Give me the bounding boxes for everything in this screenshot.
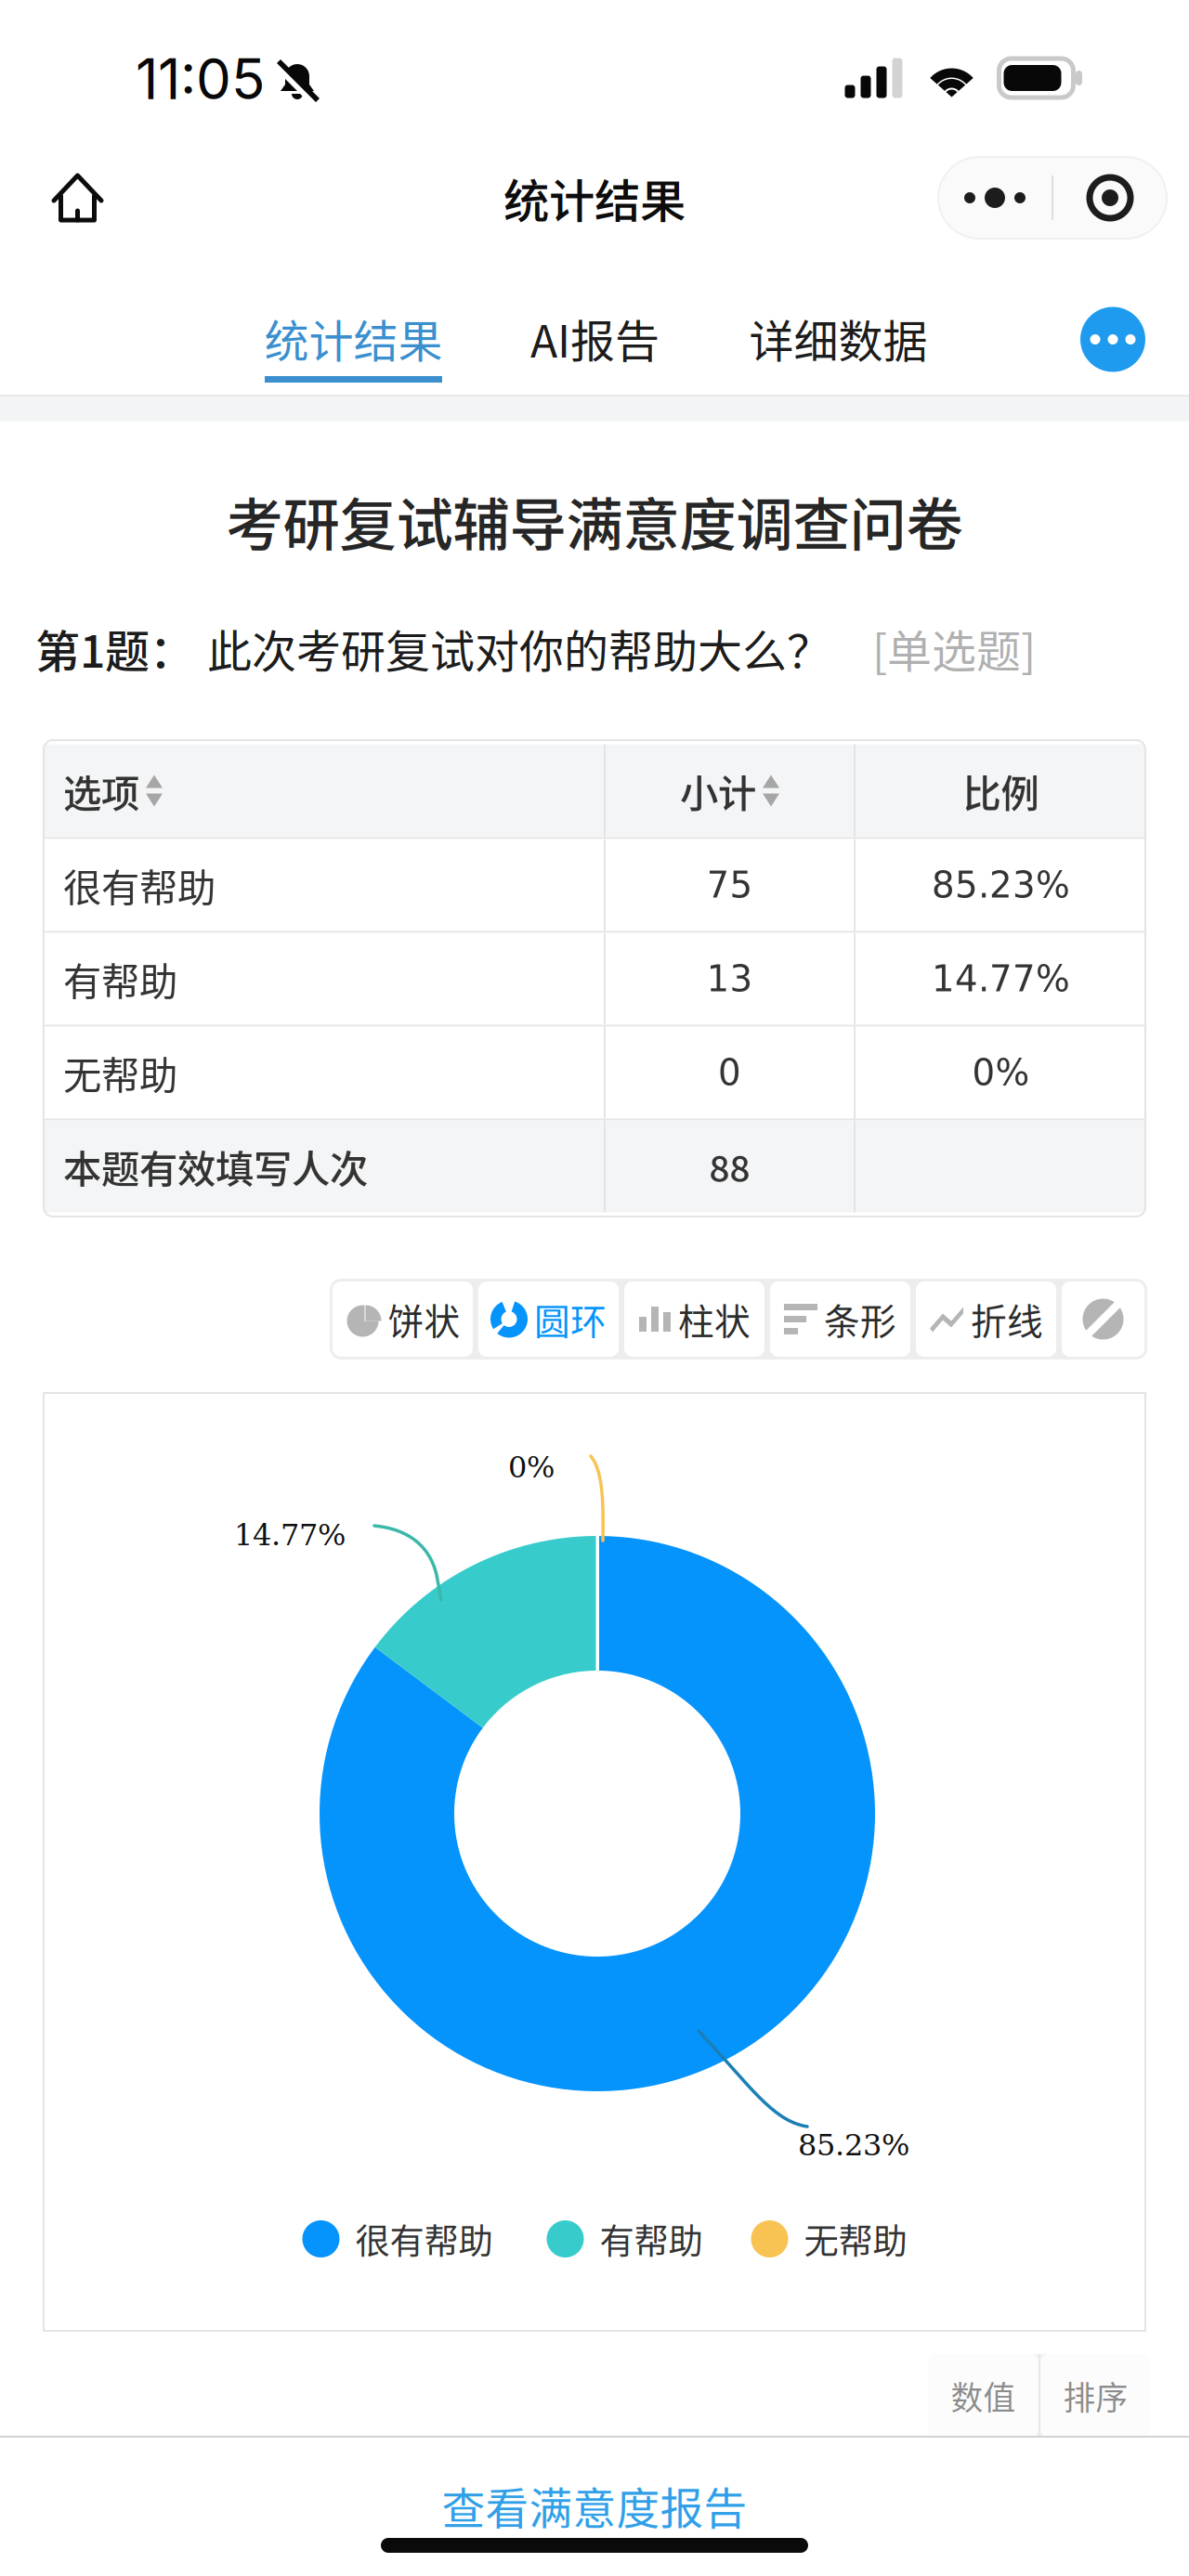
staticText: 14.77% bbox=[932, 958, 1070, 1000]
staticText: 详细数据 bbox=[749, 306, 928, 370]
staticText: 75 bbox=[706, 864, 753, 906]
button[interactable]: 折线 bbox=[916, 1281, 1056, 1357]
button[interactable]: 查看满意度报告 bbox=[442, 2481, 747, 2530]
button[interactable]: 圆环 bbox=[478, 1281, 619, 1357]
staticText: 比例 bbox=[963, 763, 1039, 819]
button[interactable]: 条形 bbox=[770, 1281, 910, 1357]
staticText: 排序 bbox=[1063, 2373, 1128, 2419]
button[interactable]: More options bbox=[1070, 297, 1156, 395]
button[interactable]: 柱状 bbox=[624, 1281, 764, 1357]
staticText: 有帮助 bbox=[600, 2214, 703, 2264]
button[interactable]: Home bbox=[36, 156, 119, 240]
staticText: 查看满意度报告 bbox=[442, 2474, 747, 2537]
staticText: 圆环 bbox=[534, 1293, 607, 1345]
button[interactable]: 饼状 bbox=[333, 1281, 473, 1357]
staticText: 第1题： bbox=[35, 616, 194, 680]
staticText: [单选题] bbox=[872, 616, 1036, 680]
staticText: 13 bbox=[706, 958, 753, 1000]
staticText: 0% bbox=[508, 1450, 555, 1484]
staticText: 无帮助 bbox=[63, 1045, 177, 1100]
staticText: AI报告 bbox=[530, 306, 660, 370]
staticText: 统计结果 bbox=[503, 165, 686, 231]
staticText: 很有帮助 bbox=[63, 857, 216, 913]
staticText: 很有帮助 bbox=[355, 2214, 493, 2264]
button[interactable]: No chart bbox=[1062, 1281, 1144, 1357]
staticText: 统计结果 bbox=[264, 306, 443, 370]
staticText: 此次考研复试对你的帮助大么？ bbox=[207, 616, 831, 680]
button[interactable]: Close bbox=[1053, 157, 1167, 239]
staticText: 柱状 bbox=[678, 1293, 751, 1345]
staticText: 85.23% bbox=[798, 2128, 909, 2162]
staticText: 本题有效填写人次 bbox=[63, 1139, 368, 1194]
staticText: 饼状 bbox=[388, 1293, 460, 1345]
button[interactable]: 排序 bbox=[1040, 2354, 1151, 2438]
staticText: 85.23% bbox=[932, 864, 1070, 906]
button[interactable]: 详细数据 bbox=[747, 297, 930, 395]
staticText: 考研复试辅导满意度调查问卷 bbox=[226, 480, 963, 562]
staticText: 条形 bbox=[824, 1293, 896, 1345]
staticText: 0% bbox=[972, 1052, 1030, 1093]
staticText: 88 bbox=[709, 1140, 750, 1192]
staticText: 折线 bbox=[971, 1293, 1043, 1345]
staticText: 0 bbox=[718, 1052, 741, 1093]
staticText: 14.77% bbox=[234, 1518, 346, 1552]
button[interactable]: AI报告 bbox=[529, 297, 661, 395]
staticText: 11:05 bbox=[136, 45, 265, 113]
button[interactable]: More bbox=[938, 157, 1052, 239]
staticText: 数值 bbox=[951, 2373, 1016, 2419]
staticText: 选项 bbox=[63, 763, 139, 819]
button[interactable]: 统计结果 bbox=[262, 297, 445, 395]
staticText: 有帮助 bbox=[63, 951, 177, 1007]
staticText: 小计 bbox=[680, 763, 756, 819]
staticText: 无帮助 bbox=[804, 2214, 907, 2264]
button[interactable]: 数值 bbox=[928, 2354, 1039, 2438]
